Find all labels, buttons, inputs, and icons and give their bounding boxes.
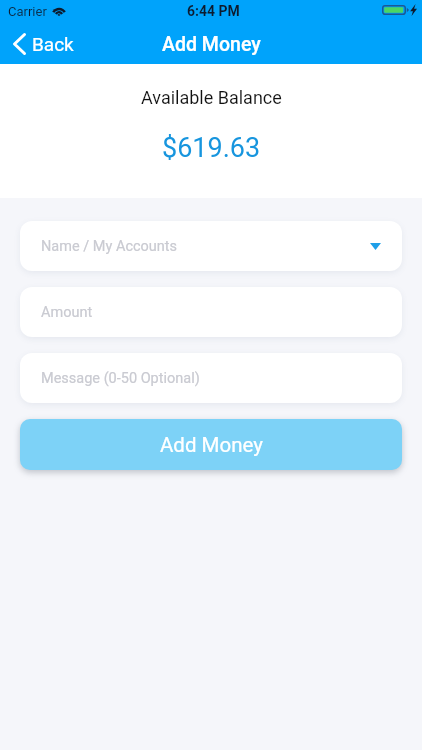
button[interactable]: Message (0-50 Optional) [20,353,402,403]
staticText: Message (0-50 Optional) [41,370,200,387]
button[interactable]: Back [13,33,74,55]
other: Wifi [51,4,67,16]
staticText: Available Balance [141,87,282,108]
staticText: Carrier [8,4,47,19]
staticText: 6:44 PM [187,3,240,19]
staticText: Amount [41,304,93,321]
button[interactable]: Name / My Accounts [20,221,402,271]
button[interactable]: Add Money [20,419,402,470]
other: Battery charging [382,5,409,15]
other: Choose account [370,243,381,250]
staticText: Add Money [160,433,263,457]
staticText: Name / My Accounts [41,238,178,255]
staticText: Add Money [162,33,261,56]
staticText: Back [32,33,74,55]
button[interactable]: Amount [20,287,402,337]
staticText: $619.63 [162,132,261,164]
